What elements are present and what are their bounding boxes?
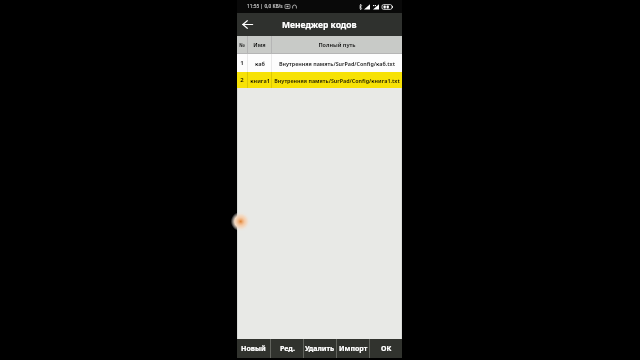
button[interactable]: 2 (237, 72, 402, 88)
staticText: Внутренняя память/SurPad/Config/каб.txt (279, 60, 395, 67)
staticText: 11:55 | 0,0 KB/s (247, 3, 283, 10)
button[interactable]: Ред. (271, 339, 303, 358)
staticText: 1 (240, 59, 244, 67)
button[interactable]: Новый (237, 339, 270, 358)
staticText: Имя (253, 41, 266, 48)
staticText: Внутренняя память/SurPad/Config/книга1.t… (274, 77, 400, 84)
staticText: Менеджер кодов (282, 19, 357, 31)
button[interactable]: ОК (370, 339, 402, 358)
staticText: Полный путь (318, 41, 356, 48)
staticText: Ред. (280, 344, 295, 354)
staticText: каб (255, 60, 265, 67)
staticText: Удалить (305, 344, 335, 354)
staticText: книга1 (250, 77, 270, 84)
button[interactable]: 1 (237, 54, 402, 72)
button[interactable]: Назад (237, 13, 257, 36)
staticText: Импорт (339, 344, 368, 354)
staticText: ОК (381, 344, 392, 354)
staticText: 2 (240, 76, 244, 84)
button[interactable]: Удалить (304, 339, 336, 358)
button[interactable]: Импорт (337, 339, 369, 358)
staticText: Новый (241, 344, 266, 354)
staticText: № (239, 41, 245, 48)
